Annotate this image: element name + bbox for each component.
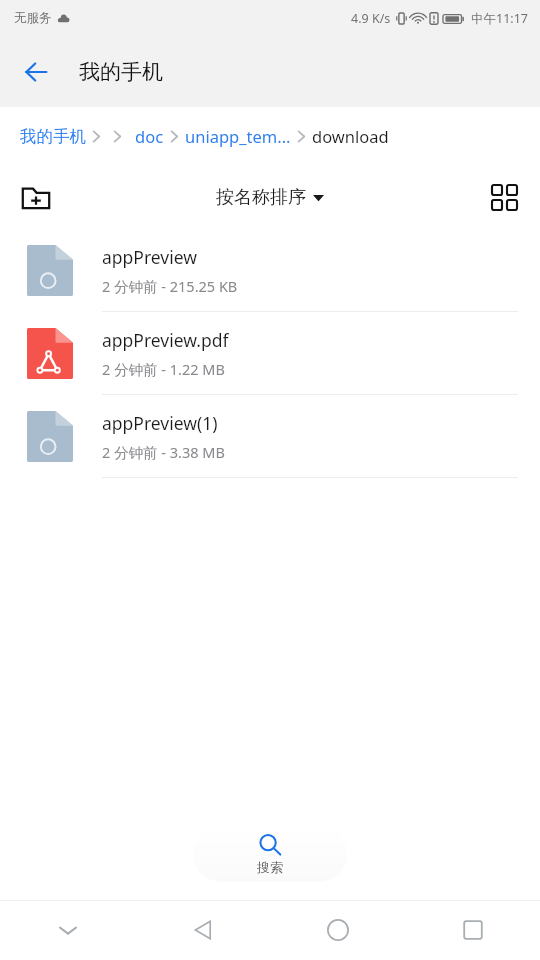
staticText: 无服务: [14, 10, 52, 26]
staticText: appPreview: [102, 245, 198, 269]
staticText: uniapp_tem...: [185, 125, 291, 147]
staticText: 我的手机: [79, 59, 163, 85]
staticText: 中午11:17: [471, 10, 528, 27]
staticText: 2 分钟前 - 3.38 MB: [102, 442, 225, 462]
button[interactable]: 按名称排序: [210, 180, 330, 215]
staticText: 搜索: [257, 859, 283, 875]
button[interactable]: Back: [135, 900, 270, 960]
staticText: 4.9 K/s: [351, 10, 391, 27]
button[interactable]: download: [312, 125, 389, 147]
button[interactable]: Back: [12, 48, 60, 96]
staticText: appPreview(1): [102, 411, 218, 435]
staticText: 2 分钟前 - 215.25 KB: [102, 276, 238, 296]
button[interactable]: Home: [270, 900, 405, 960]
button[interactable]: appPreview: [0, 229, 540, 312]
button[interactable]: New folder: [10, 171, 62, 223]
staticText: 2 分钟前 - 1.22 MB: [102, 359, 225, 379]
button[interactable]: appPreview.pdf: [0, 312, 540, 395]
button[interactable]: Grid view: [478, 171, 530, 223]
staticText: 按名称排序: [216, 186, 306, 209]
button[interactable]: appPreview(1): [0, 395, 540, 478]
staticText: 我的手机: [20, 126, 86, 147]
button[interactable]: 我的手机: [20, 126, 86, 147]
staticText: doc: [135, 125, 164, 147]
button[interactable]: doc: [135, 125, 164, 147]
button[interactable]: Hide keyboard: [0, 900, 135, 960]
button[interactable]: uniapp_tem...: [185, 125, 291, 147]
button[interactable]: Recents: [405, 900, 540, 960]
button[interactable]: 搜索: [193, 826, 347, 882]
staticText: download: [312, 125, 389, 147]
staticText: appPreview.pdf: [102, 328, 229, 352]
